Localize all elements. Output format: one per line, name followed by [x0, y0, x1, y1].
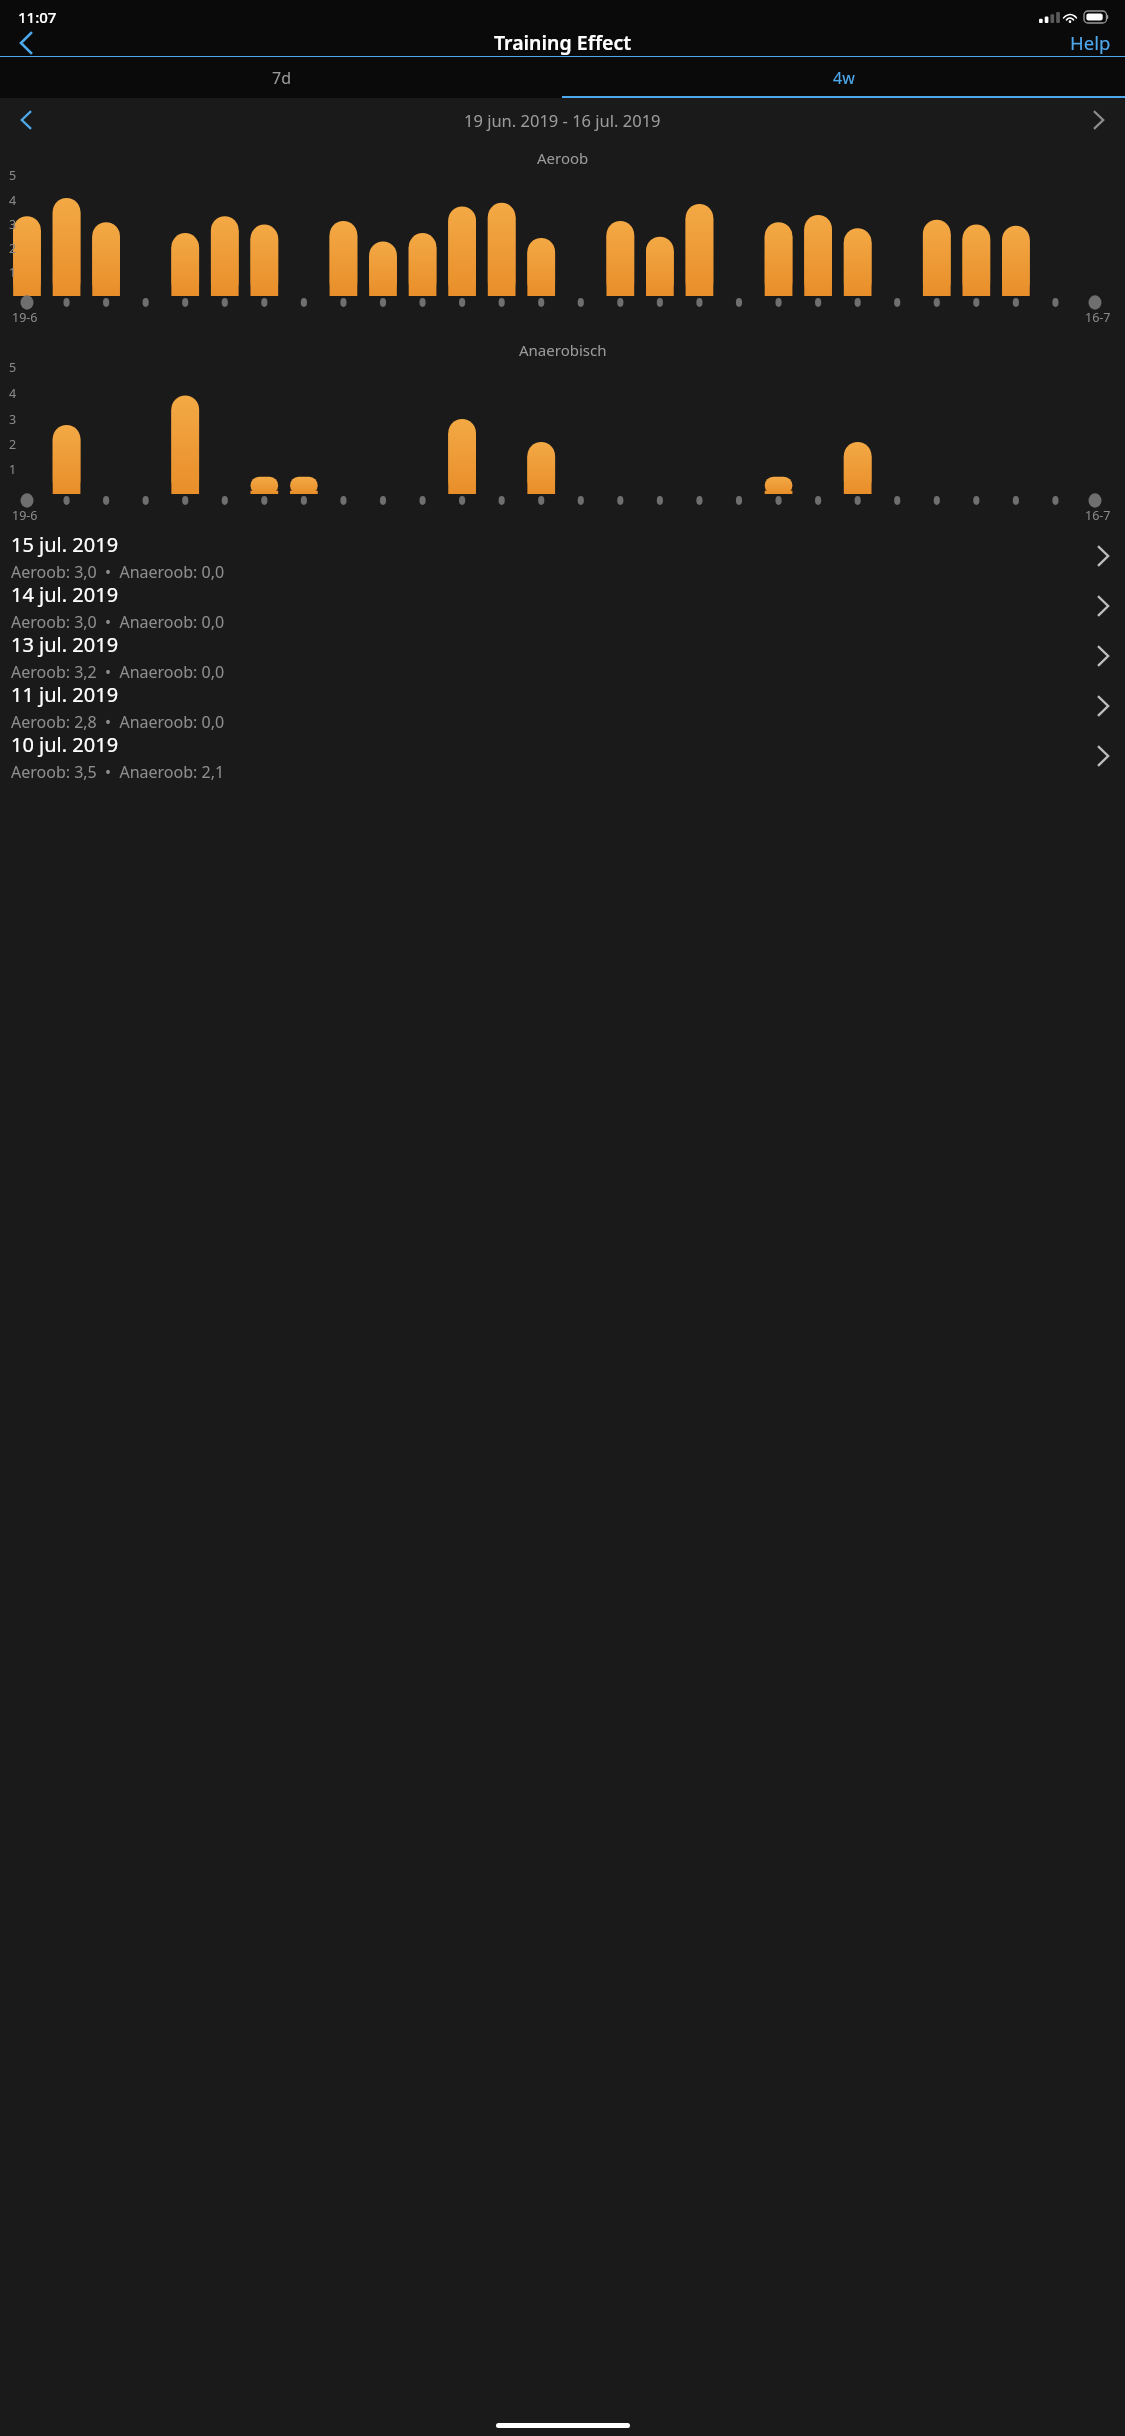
staticText: 2	[9, 436, 17, 453]
button[interactable]: 10 jul. 2019	[0, 731, 1125, 781]
button[interactable]: Previous period	[0, 98, 52, 141]
staticText: 7d	[272, 67, 291, 89]
staticText: Help	[1070, 30, 1111, 55]
staticText: Aeroob: 2,8 • Anaeroob: 0,0	[11, 711, 225, 731]
staticText: 11:07	[18, 7, 57, 27]
staticText: 19-6	[12, 507, 38, 524]
staticText: Aeroob	[537, 148, 589, 168]
staticText: 3	[9, 411, 17, 428]
staticText: Aeroob: 3,0 • Anaeroob: 0,0	[11, 611, 225, 631]
staticText: 1	[9, 461, 17, 478]
button[interactable]: 15 jul. 2019	[0, 531, 1125, 581]
staticText: 3	[9, 216, 17, 233]
staticText: 1	[9, 264, 17, 281]
staticText: Aeroob: 3,0 • Anaeroob: 0,0	[11, 561, 225, 581]
staticText: 4	[9, 192, 17, 209]
staticText: Anaerobisch	[519, 340, 607, 360]
staticText: 4w	[833, 67, 855, 89]
button[interactable]: 7d	[0, 57, 562, 98]
staticText: Aeroob: 3,5 • Anaeroob: 2,1	[11, 761, 225, 781]
staticText: Aeroob: 3,2 • Anaeroob: 0,0	[11, 661, 225, 681]
staticText: 2	[9, 240, 17, 257]
button[interactable]: Back	[0, 29, 52, 56]
staticText: Training Effect	[494, 29, 632, 56]
staticText: 5	[9, 359, 17, 376]
staticText: 16-7	[1085, 309, 1111, 326]
staticText: 5	[9, 167, 17, 184]
staticText: 19 jun. 2019 - 16 jul. 2019	[464, 109, 661, 131]
button[interactable]: 4w	[562, 57, 1125, 98]
staticText: 4	[9, 385, 17, 402]
button[interactable]: Help	[1056, 29, 1125, 56]
staticText: 11 jul. 2019	[11, 681, 119, 708]
staticText: 13 jul. 2019	[11, 631, 119, 658]
button[interactable]: 11 jul. 2019	[0, 681, 1125, 731]
staticText: 16-7	[1085, 507, 1111, 524]
button[interactable]: Next period	[1073, 98, 1125, 141]
button[interactable]: 14 jul. 2019	[0, 581, 1125, 631]
staticText: 10 jul. 2019	[11, 731, 119, 758]
staticText: 15 jul. 2019	[11, 531, 119, 558]
staticText: 14 jul. 2019	[11, 581, 119, 608]
button[interactable]: 13 jul. 2019	[0, 631, 1125, 681]
staticText: 19-6	[12, 309, 38, 326]
